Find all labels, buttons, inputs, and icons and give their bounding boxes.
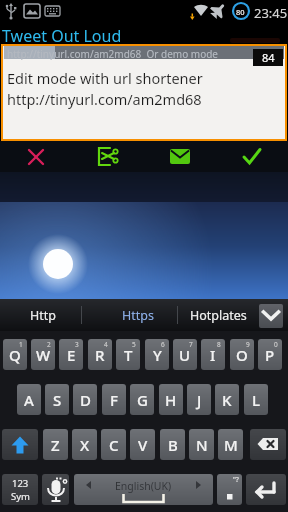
button[interactable]: J bbox=[187, 384, 211, 415]
staticText: K bbox=[222, 390, 232, 410]
button[interactable] bbox=[2, 429, 38, 460]
button[interactable]: S bbox=[45, 384, 69, 415]
staticText: 6 bbox=[161, 340, 165, 349]
staticText: C bbox=[109, 435, 119, 455]
button[interactable]: K bbox=[215, 384, 239, 415]
button[interactable]: M bbox=[218, 429, 243, 460]
staticText: G bbox=[137, 390, 148, 410]
button[interactable]: W bbox=[31, 339, 55, 370]
staticText: 0 bbox=[274, 340, 278, 349]
button[interactable] bbox=[144, 141, 216, 172]
staticText: 1 bbox=[19, 340, 23, 349]
staticText: English(UK) bbox=[115, 479, 172, 493]
button[interactable]: B bbox=[160, 429, 185, 460]
staticText: X bbox=[80, 435, 90, 455]
button[interactable]: X bbox=[72, 429, 97, 460]
staticText: Http bbox=[30, 307, 56, 324]
button[interactable]: U bbox=[173, 339, 197, 370]
staticText: 123 bbox=[12, 477, 29, 490]
staticText: P bbox=[265, 345, 275, 365]
button[interactable]: A bbox=[17, 384, 41, 415]
staticText: 7 bbox=[189, 340, 193, 349]
button[interactable]: Y bbox=[145, 339, 169, 370]
staticText: H bbox=[165, 390, 177, 410]
button[interactable] bbox=[72, 141, 144, 172]
staticText: V bbox=[138, 435, 148, 455]
staticText: J bbox=[197, 390, 202, 410]
button[interactable]: "? bbox=[217, 474, 242, 505]
staticText: W bbox=[36, 345, 51, 365]
button[interactable]: P bbox=[258, 339, 282, 370]
button[interactable] bbox=[246, 474, 286, 505]
button[interactable] bbox=[216, 141, 288, 172]
button[interactable]: E bbox=[59, 339, 83, 370]
staticText: B bbox=[168, 435, 178, 455]
staticText: 9 bbox=[246, 340, 250, 349]
button[interactable]: L bbox=[244, 384, 268, 415]
staticText: U bbox=[179, 345, 191, 365]
staticText: F bbox=[110, 390, 118, 410]
button[interactable]: 123 bbox=[2, 474, 38, 505]
button[interactable]: T bbox=[116, 339, 140, 370]
staticText: L bbox=[252, 390, 261, 410]
staticText: Y bbox=[153, 345, 162, 365]
button[interactable] bbox=[42, 474, 69, 505]
button[interactable]: C bbox=[101, 429, 126, 460]
staticText: O bbox=[236, 345, 248, 365]
button[interactable]: G bbox=[130, 384, 154, 415]
button[interactable]: http://tinyurl.com/am2md68 Or demo mode bbox=[1, 44, 287, 141]
staticText: R bbox=[95, 345, 105, 365]
button[interactable]: Hotplates bbox=[183, 303, 253, 327]
button[interactable]: Https bbox=[110, 303, 166, 327]
staticText: M bbox=[224, 435, 238, 455]
staticText: "? bbox=[233, 475, 239, 485]
staticText: Sym bbox=[11, 490, 30, 503]
staticText: 80 bbox=[236, 7, 245, 17]
staticText: Q bbox=[9, 345, 21, 365]
staticText: http://tinyurl.com/am2md68 Or demo mode bbox=[7, 47, 218, 60]
staticText: 23:45 bbox=[254, 4, 288, 22]
staticText: D bbox=[80, 390, 91, 410]
button[interactable]: Http bbox=[20, 303, 66, 327]
button[interactable]: F bbox=[102, 384, 126, 415]
staticText: A bbox=[24, 390, 34, 410]
button[interactable]: N bbox=[189, 429, 214, 460]
staticText: 8 bbox=[217, 340, 221, 349]
staticText: Hotplates bbox=[190, 307, 247, 324]
staticText: E bbox=[67, 345, 76, 365]
button[interactable]: Q bbox=[3, 339, 27, 370]
button[interactable]: V bbox=[130, 429, 155, 460]
staticText: 5 bbox=[132, 340, 136, 349]
staticText: 2 bbox=[47, 340, 51, 349]
button[interactable]: R bbox=[88, 339, 112, 370]
staticText: 84 bbox=[262, 50, 275, 65]
button[interactable]: English(UK) bbox=[74, 474, 213, 505]
staticText: I bbox=[210, 345, 216, 365]
staticText: Https bbox=[122, 307, 154, 324]
staticText: 3 bbox=[75, 340, 79, 349]
button[interactable]: I bbox=[201, 339, 225, 370]
staticText: http://tinyurl.com/am2md68 bbox=[7, 89, 202, 109]
button[interactable] bbox=[0, 141, 72, 172]
staticText: N bbox=[196, 435, 208, 455]
button[interactable] bbox=[259, 304, 283, 328]
staticText: S bbox=[53, 390, 62, 410]
button[interactable]: Z bbox=[43, 429, 68, 460]
staticText: 4 bbox=[104, 340, 108, 349]
staticText: Z bbox=[51, 435, 60, 455]
button[interactable]: H bbox=[159, 384, 183, 415]
button[interactable] bbox=[250, 429, 286, 460]
button[interactable]: O bbox=[230, 339, 254, 370]
staticText: Edit mode with url shortener bbox=[7, 68, 203, 88]
staticText: T bbox=[124, 345, 133, 365]
button[interactable]: D bbox=[73, 384, 97, 415]
staticText: Tweet Out Loud bbox=[2, 25, 122, 47]
